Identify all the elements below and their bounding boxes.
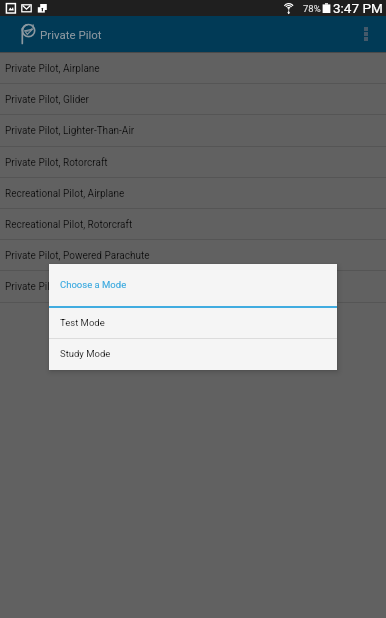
button[interactable]: Private Pilot, Balloon [0, 271, 386, 303]
button[interactable]: Private Pilot, Lighter-Than-Air [0, 115, 386, 147]
staticText: Private Pilot, Airplane [5, 63, 100, 75]
staticText: Choose a Mode [60, 279, 127, 290]
staticText: Recreational Pilot, Rotorcraft [5, 219, 133, 231]
staticText: 78% [303, 3, 321, 14]
staticText: Private Pilot, Lighter-Than-Air [5, 125, 135, 137]
button[interactable]: Private Pilot, Airplane [0, 53, 386, 84]
button[interactable]: Private Pilot, Powered Parachute [0, 240, 386, 271]
staticText: Private Pilot, Balloon [5, 281, 97, 293]
staticText: Test Mode [60, 317, 105, 328]
staticText: Private Pilot [40, 28, 102, 41]
button[interactable]: More options [348, 16, 384, 52]
staticText: 3:47 PM [333, 0, 383, 16]
button[interactable]: Study Mode [49, 339, 337, 370]
staticText: Recreational Pilot, Airplane [5, 188, 125, 200]
button[interactable]: Private Pilot, Rotorcraft [0, 147, 386, 178]
staticText: Study Mode [60, 348, 111, 359]
staticText: Private Pilot, Powered Parachute [5, 250, 150, 262]
button[interactable]: Recreational Pilot, Rotorcraft [0, 209, 386, 240]
button[interactable]: Private Pilot, Glider [0, 84, 386, 115]
button[interactable]: Recreational Pilot, Airplane [0, 178, 386, 209]
staticText: Private Pilot, Glider [5, 94, 89, 106]
button[interactable]: Test Mode [49, 308, 337, 339]
staticText: Private Pilot, Rotorcraft [5, 157, 108, 169]
